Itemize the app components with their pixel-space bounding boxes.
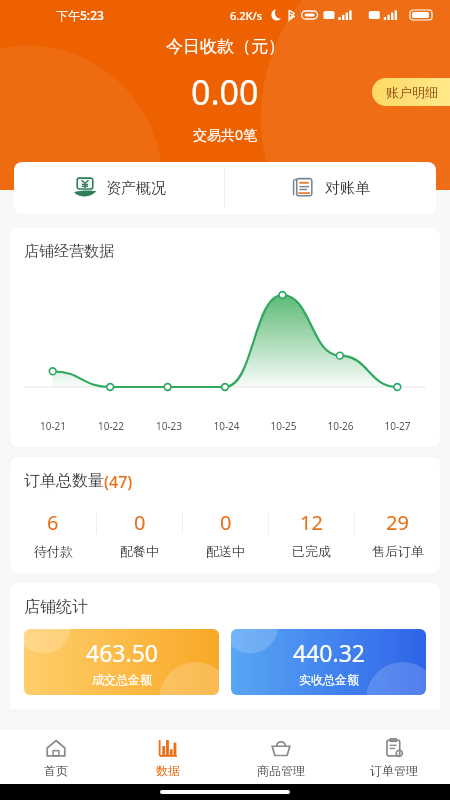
staticText: 订单管理 [370, 763, 418, 778]
button[interactable]: 463.50 [24, 629, 219, 695]
button[interactable]: 440.32 [231, 629, 426, 695]
staticText: 10-27 [369, 419, 426, 433]
staticText: 数据 [156, 763, 180, 778]
staticText: 售后订单 [372, 543, 424, 559]
staticText: 0 [134, 509, 146, 536]
button[interactable]: 资产概况 [14, 162, 224, 214]
button[interactable]: 0 [97, 509, 182, 559]
staticText: 6 [47, 509, 59, 536]
button[interactable]: 0 [183, 509, 268, 559]
staticText: (47) [104, 471, 133, 493]
staticText: 29 [386, 509, 409, 536]
button[interactable]: 对账单 [225, 162, 436, 214]
button[interactable]: 6 [10, 509, 96, 559]
staticText: 商品管理 [257, 763, 305, 778]
staticText: 待付款 [34, 543, 73, 559]
staticText: 0.00 [191, 69, 259, 115]
staticText: 12 [300, 509, 323, 536]
staticText: 463.50 [86, 637, 158, 668]
staticText: 10-26 [312, 419, 369, 433]
staticText: 440.32 [293, 637, 365, 668]
staticText: 10-25 [255, 419, 312, 433]
staticText: 6.2K/s [230, 8, 263, 23]
button[interactable]: 账户明细 [372, 78, 450, 106]
staticText: 已完成 [292, 543, 331, 559]
staticText: 10-24 [198, 419, 255, 433]
staticText: 交易共0笔 [193, 125, 258, 144]
staticText: 订单总数量 [24, 471, 104, 491]
button[interactable]: 29 [355, 509, 440, 559]
staticText: 配餐中 [120, 543, 159, 559]
staticText: 10-22 [82, 419, 140, 433]
staticText: 实收总金额 [299, 672, 359, 687]
staticText: 首页 [44, 763, 68, 778]
staticText: 配送中 [206, 543, 245, 559]
staticText: 对账单 [325, 179, 370, 198]
button[interactable]: 订单管理 [337, 730, 450, 784]
button[interactable]: 首页 [0, 730, 112, 784]
staticText: 资产概况 [106, 179, 166, 198]
staticText: 今日收款（元） [166, 36, 285, 57]
staticText: 店铺统计 [24, 597, 88, 617]
button[interactable]: 商品管理 [224, 730, 337, 784]
staticText: 店铺经营数据 [24, 242, 114, 261]
staticText: 下午5:23 [56, 7, 104, 23]
button[interactable]: 数据 [112, 730, 224, 784]
button[interactable]: 12 [269, 509, 354, 559]
staticText: 成交总金额 [92, 672, 152, 687]
staticText: 账户明细 [386, 84, 438, 100]
staticText: 10-21 [24, 419, 82, 433]
staticText: 10-23 [140, 419, 198, 433]
staticText: 0 [220, 509, 232, 536]
